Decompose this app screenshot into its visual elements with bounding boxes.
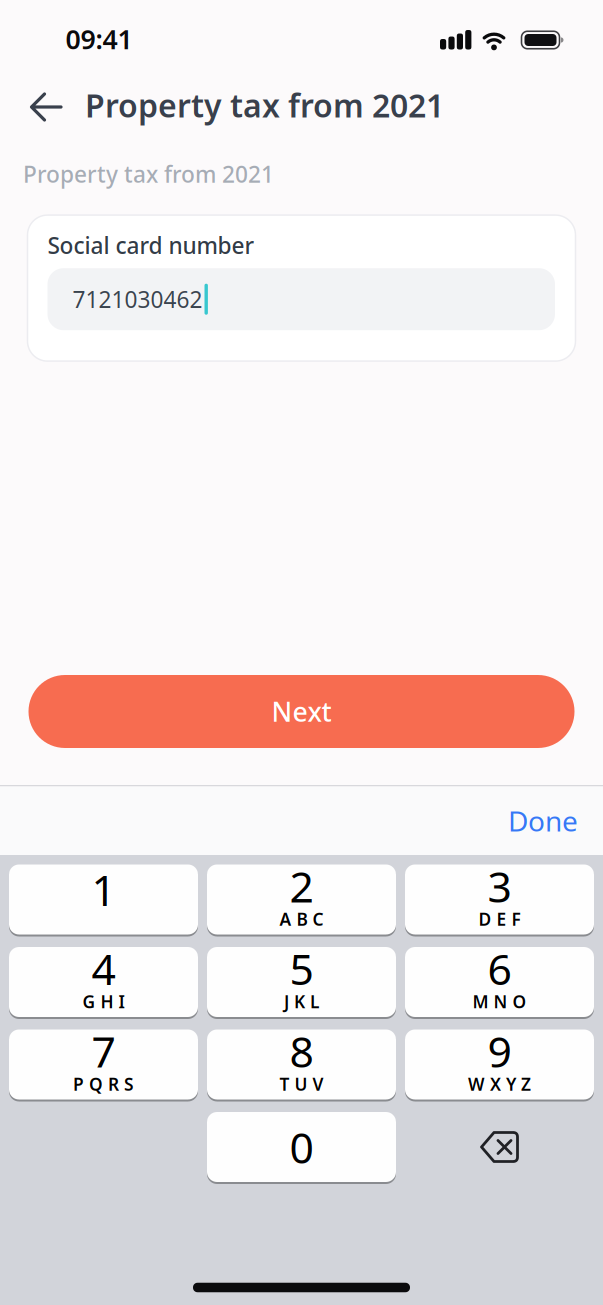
button[interactable]: 6 — [405, 947, 594, 1017]
button[interactable]: 8 — [207, 1029, 396, 1099]
staticText: A B C — [279, 907, 323, 930]
staticText: G H I — [82, 990, 124, 1013]
button[interactable]: 5 — [207, 947, 396, 1017]
staticText: Next — [271, 694, 331, 729]
staticText: 7121030462 — [72, 284, 202, 314]
staticText: 1 — [91, 861, 115, 918]
button[interactable]: 0 — [207, 1112, 396, 1182]
staticText: J K L — [284, 990, 319, 1013]
button[interactable]: 9 — [405, 1029, 594, 1099]
staticText: 09:41 — [65, 21, 132, 57]
staticText: Property tax from 2021 — [85, 84, 444, 126]
button[interactable]: Done — [508, 802, 578, 839]
staticText: 0 — [289, 1119, 313, 1175]
staticText: 4 — [91, 940, 115, 997]
staticText: 3 — [487, 858, 511, 914]
staticText: W X Y Z — [468, 1072, 531, 1095]
staticText: 2 — [289, 858, 313, 914]
button[interactable]: 1 — [9, 864, 198, 934]
staticText: 7 — [91, 1023, 115, 1079]
staticText: T U V — [279, 1072, 323, 1095]
button[interactable]: Social card number field — [47, 268, 555, 330]
button[interactable]: Back — [29, 92, 63, 122]
staticText: 6 — [487, 940, 511, 997]
staticText: D E F — [478, 907, 520, 930]
button[interactable]: Delete — [405, 1112, 594, 1182]
staticText: Social card number — [47, 230, 254, 260]
staticText: 5 — [289, 940, 313, 997]
staticText: P Q R S — [73, 1072, 134, 1095]
staticText: Done — [508, 802, 578, 839]
staticText: M N O — [472, 990, 526, 1013]
staticText: 8 — [289, 1023, 313, 1079]
staticText: 9 — [487, 1023, 511, 1079]
button[interactable]: 2 — [207, 864, 396, 934]
button[interactable]: 7 — [9, 1029, 198, 1099]
button[interactable]: Next — [28, 675, 574, 748]
staticText: Property tax from 2021 — [23, 159, 274, 189]
button[interactable]: 4 — [9, 947, 198, 1017]
button[interactable]: 3 — [405, 864, 594, 934]
